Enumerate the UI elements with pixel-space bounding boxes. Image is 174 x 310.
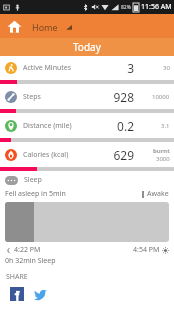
staticText: 3.1 <box>161 122 170 130</box>
button[interactable]: Share on Twitter <box>34 287 48 301</box>
staticText: 928 <box>113 89 134 105</box>
button[interactable]: Steps <box>0 85 174 114</box>
staticText: Active Minutes <box>23 63 72 73</box>
staticText: 30 <box>163 64 170 72</box>
staticText: burnt <box>153 147 170 155</box>
staticText: 11:56 AM <box>141 2 172 12</box>
button[interactable]: Home <box>0 14 174 38</box>
staticText: SHARE <box>6 272 28 282</box>
other: Home <box>7 19 22 34</box>
staticText: 10000 <box>152 93 170 101</box>
button[interactable]: Today <box>0 38 174 56</box>
button[interactable]: Active Minutes <box>0 56 174 85</box>
staticText: 3000 <box>156 155 170 163</box>
button[interactable]: Distance (mile) <box>0 114 174 143</box>
staticText: 3 <box>127 60 134 76</box>
staticText: 4:54 PM <box>133 245 160 255</box>
staticText: Steps <box>23 92 41 102</box>
staticText: Calories (kcal) <box>23 150 69 160</box>
button[interactable]: Calories (kcal) <box>0 143 174 172</box>
staticText: Today <box>73 40 101 54</box>
staticText: Home <box>32 21 58 33</box>
staticText: 82% <box>121 4 131 11</box>
staticText: Fell asleep in 5min <box>5 189 66 199</box>
staticText: Distance (mile) <box>23 121 72 131</box>
button[interactable]: Share on Facebook <box>10 287 24 301</box>
staticText: 4:22 PM <box>14 245 41 255</box>
button[interactable]: Sleep <box>0 172 174 266</box>
staticText: 0.2 <box>117 118 134 134</box>
staticText: Awake <box>147 189 169 199</box>
staticText: 629 <box>113 147 134 163</box>
staticText: 0h 32min Sleep <box>5 256 56 266</box>
staticText: Sleep <box>24 175 42 185</box>
